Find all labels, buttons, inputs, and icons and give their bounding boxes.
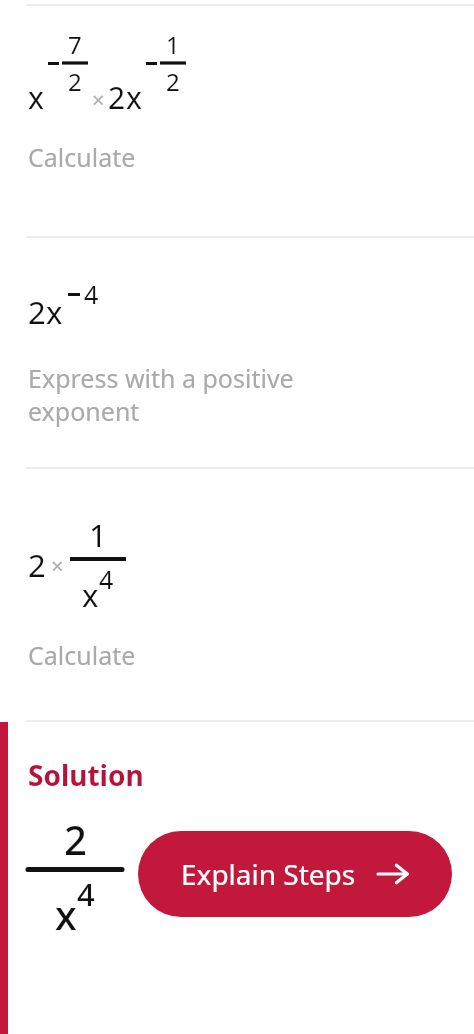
staticText: x bbox=[28, 77, 44, 118]
staticText: 4 bbox=[99, 562, 114, 596]
staticText: 2 bbox=[68, 65, 82, 98]
staticText: Calculate bbox=[28, 140, 136, 174]
staticText: 4 bbox=[77, 873, 95, 915]
staticText: 2 bbox=[166, 65, 180, 98]
staticText: 2 bbox=[64, 812, 87, 866]
staticText: Express with a positive exponent bbox=[28, 361, 398, 428]
staticText: 1 bbox=[89, 514, 107, 556]
staticText: 2 bbox=[108, 77, 126, 118]
other: Explain Steps bbox=[376, 857, 410, 891]
staticText: 7 bbox=[68, 28, 82, 61]
staticText: x bbox=[55, 887, 77, 941]
button[interactable]: 2 bbox=[0, 469, 474, 720]
staticText: 2 bbox=[28, 291, 46, 333]
staticText: 2 bbox=[28, 544, 46, 586]
staticText: × bbox=[92, 84, 105, 114]
staticText: 4 bbox=[84, 277, 99, 311]
staticText: Calculate bbox=[28, 638, 136, 672]
staticText: x bbox=[46, 291, 63, 333]
staticText: Explain Steps bbox=[181, 855, 356, 893]
button[interactable]: 2 bbox=[0, 238, 474, 467]
button[interactable]: x bbox=[0, 6, 474, 236]
staticText: Solution bbox=[28, 756, 144, 794]
button[interactable]: Explain Steps bbox=[138, 831, 452, 917]
staticText: × bbox=[51, 550, 64, 580]
staticText: x bbox=[82, 574, 99, 616]
staticText: x bbox=[126, 77, 142, 118]
staticText: 1 bbox=[166, 28, 180, 61]
